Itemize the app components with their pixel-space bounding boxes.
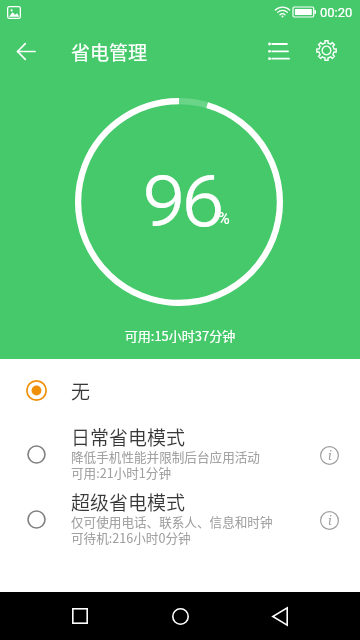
staticText: 日常省电模式	[71, 423, 186, 451]
staticText: 仅可使用电话、联系人、信息和时钟	[71, 512, 273, 530]
button[interactable]: Home	[156, 592, 204, 640]
staticText: 降低手机性能并限制后台应用活动	[71, 447, 260, 465]
button[interactable]: 超级省电模式	[0, 487, 360, 552]
button[interactable]: Back	[256, 592, 304, 640]
button[interactable]: Settings	[302, 26, 350, 74]
staticText: 00:20	[320, 5, 353, 20]
staticText: 可用:21小时1分钟	[71, 463, 172, 481]
button[interactable]: Info	[309, 435, 349, 475]
button[interactable]: 日常省电模式	[0, 422, 360, 487]
staticText: 省电管理	[71, 38, 148, 66]
staticText: 可待机:216小时0分钟	[71, 528, 191, 546]
staticText: i	[328, 447, 332, 463]
staticText: 无	[71, 377, 91, 405]
staticText: i	[328, 512, 332, 528]
button[interactable]: Back	[2, 27, 50, 75]
button[interactable]: Recent apps	[56, 592, 104, 640]
staticText: 超级省电模式	[71, 488, 186, 516]
button[interactable]: 无	[0, 359, 360, 422]
button[interactable]: List view	[254, 26, 302, 74]
staticText: 96	[144, 161, 224, 243]
staticText: 可用:15小时37分钟	[0, 326, 360, 345]
button[interactable]: Info	[309, 500, 349, 540]
staticText: %	[218, 209, 230, 228]
